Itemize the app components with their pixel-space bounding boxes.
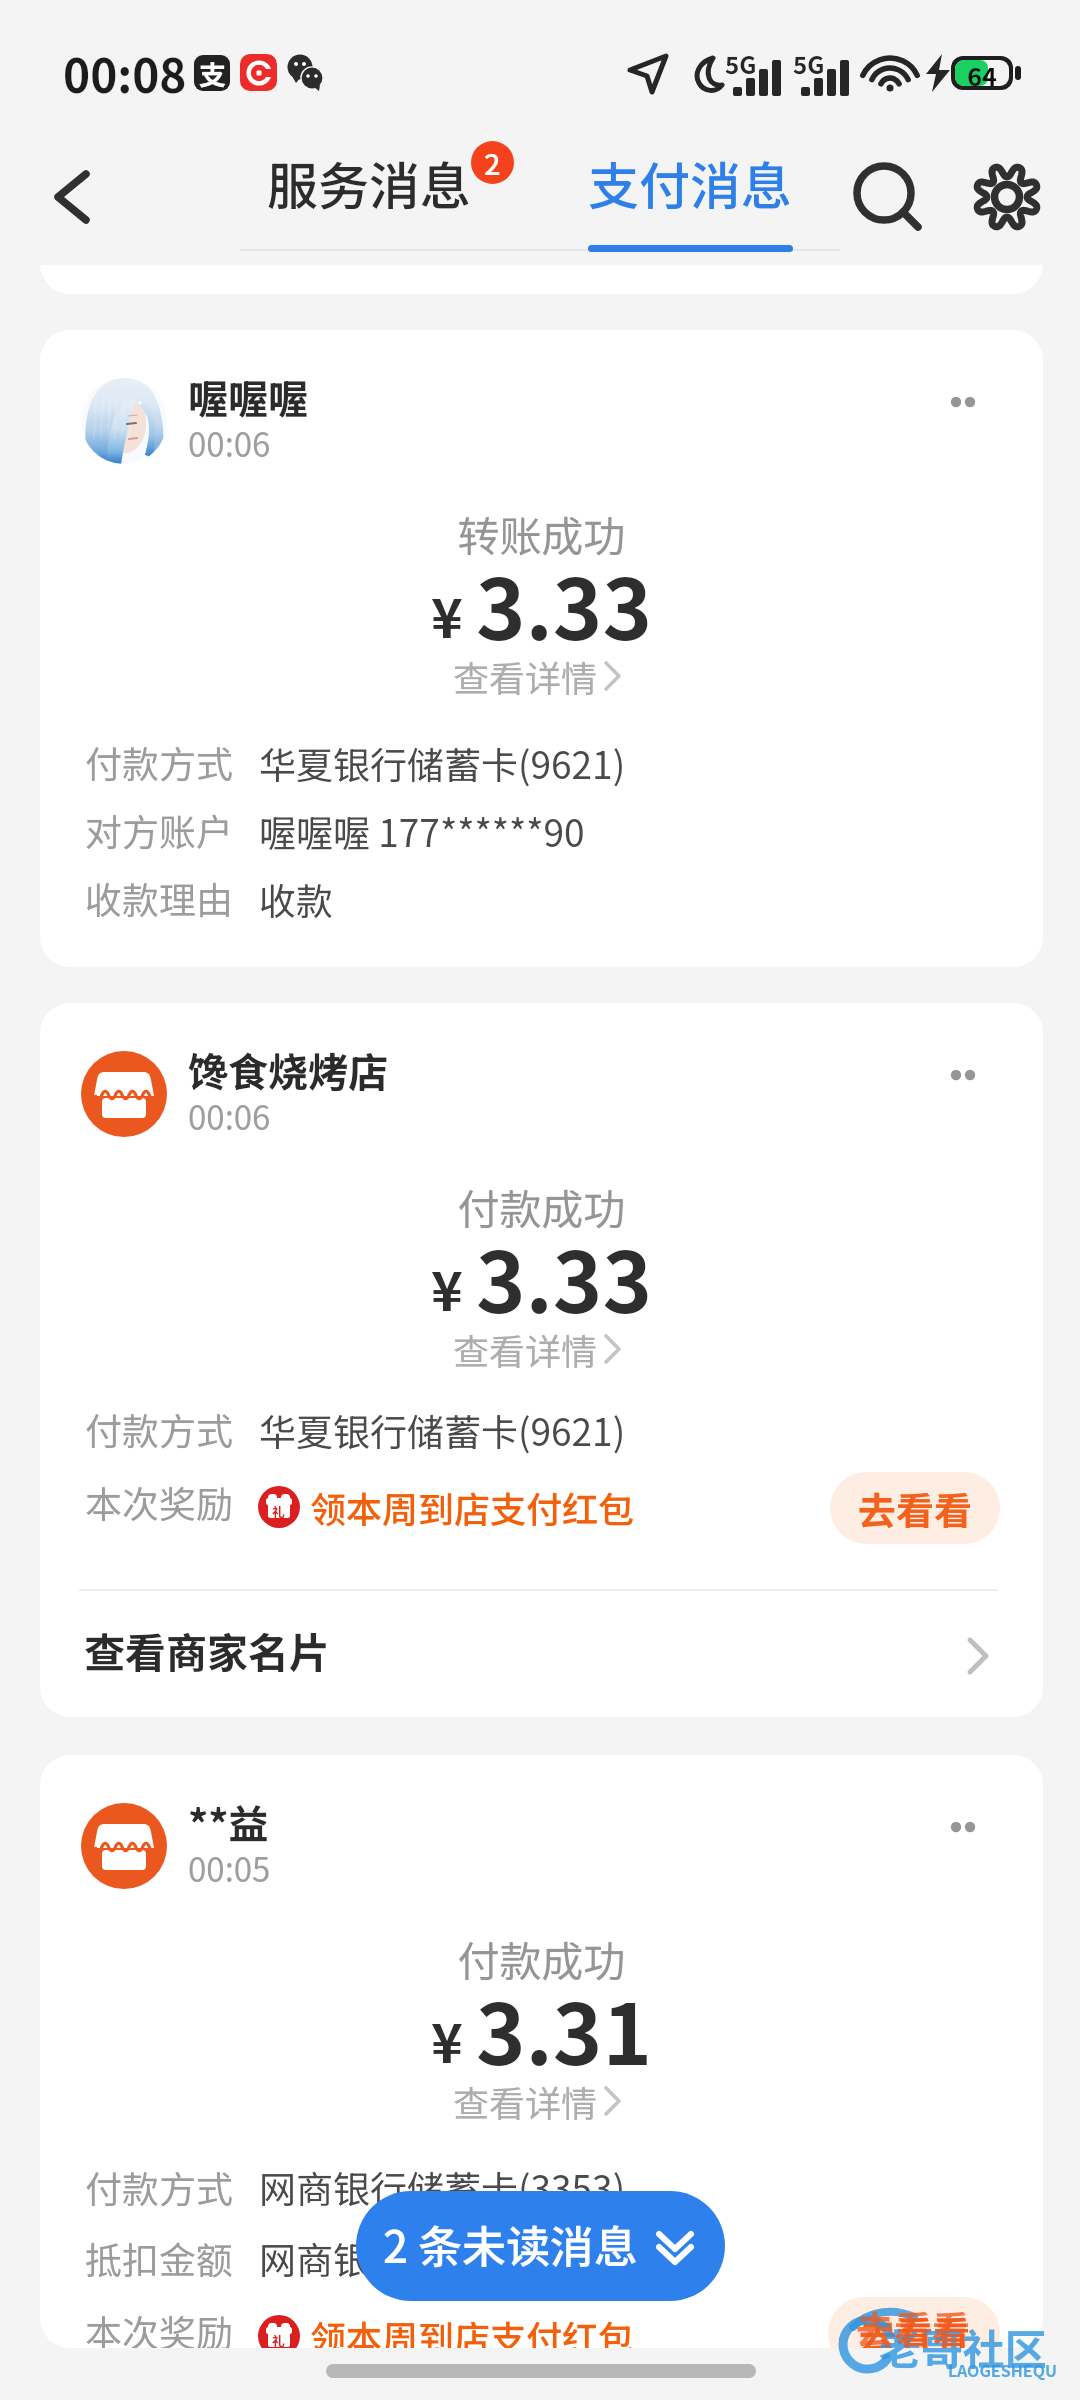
staticText: ¥: [431, 575, 463, 653]
staticText: 转账成功: [40, 503, 1043, 564]
staticText: 00:05: [188, 1844, 271, 1892]
staticText: 馋食烧烤店: [188, 1041, 388, 1099]
staticText: 喔喔喔 177******90: [259, 804, 585, 858]
button[interactable]: Search: [830, 140, 940, 250]
staticText: 抵扣金额: [85, 2231, 233, 2285]
staticText: 付款方式: [85, 1402, 233, 1456]
staticText: 查看详情: [453, 2075, 598, 2127]
staticText: 老哥社区: [879, 2316, 1048, 2377]
button[interactable]: **益: [40, 1755, 1043, 2348]
staticText: 查看详情: [453, 650, 598, 702]
staticText: 服务消息: [267, 146, 472, 220]
button[interactable]: 服务消息: [250, 140, 500, 250]
button[interactable]: 查看详情: [40, 1323, 1043, 1375]
button[interactable]: More options: [912, 1795, 1002, 1855]
staticText: 礼: [272, 2331, 286, 2348]
button[interactable]: 礼: [258, 1481, 635, 1533]
button[interactable]: More options: [912, 1043, 1002, 1103]
button[interactable]: 礼: [258, 2310, 635, 2348]
button[interactable]: 查看商家名片: [40, 1593, 1043, 1717]
staticText: 去看看: [856, 2300, 971, 2355]
staticText: 本次奖励: [85, 2304, 233, 2348]
button[interactable]: 查看详情: [40, 650, 1043, 702]
staticText: 付款方式: [85, 2160, 233, 2214]
staticText: 网商银行储蓄卡(3353): [259, 2160, 626, 2214]
staticText: **益: [188, 1793, 269, 1851]
button[interactable]: Back: [20, 140, 130, 250]
staticText: 00:06: [188, 419, 271, 467]
staticText: 支付消息: [588, 146, 793, 220]
staticText: 2 条未读消息: [383, 2212, 638, 2276]
staticText: 华夏银行储蓄卡(9621): [259, 736, 626, 790]
staticText: 3.33: [476, 543, 652, 665]
staticText: 3.31: [476, 1968, 652, 2090]
staticText: 对方账户: [85, 803, 233, 857]
staticText: 查看商家名片: [84, 1620, 330, 1679]
staticText: 3.33: [476, 1216, 652, 1338]
staticText: 5G: [793, 46, 825, 81]
staticText: 去看看: [859, 2306, 970, 2348]
staticText: 00:06: [188, 1092, 271, 1140]
staticText: 00:08: [63, 40, 187, 107]
staticText: 64: [951, 57, 1013, 91]
staticText: 网商银行借记卡立减0.02: [259, 2231, 664, 2285]
button[interactable]: 去看看: [830, 1472, 1000, 1544]
staticText: 喔喔喔: [188, 368, 308, 426]
staticText: 领本周到店支付红包: [310, 2310, 635, 2348]
staticText: 付款方式: [85, 735, 233, 789]
button[interactable]: 支付消息: [570, 140, 810, 255]
staticText: 支: [199, 55, 226, 90]
staticText: 付款成功: [40, 1928, 1043, 1989]
staticText: 付款成功: [40, 1176, 1043, 1237]
staticText: 2: [484, 141, 501, 183]
staticText: 5G: [725, 46, 757, 81]
staticText: 领本周到店支付红包: [310, 1481, 635, 1533]
staticText: 礼: [272, 1502, 286, 1521]
staticText: 收款理由: [85, 871, 233, 925]
button[interactable]: Settings: [952, 140, 1062, 250]
button[interactable]: 馋食烧烤店: [40, 1003, 1043, 1717]
staticText: 华夏银行储蓄卡(9621): [259, 1403, 626, 1457]
button[interactable]: 喔喔喔: [40, 330, 1043, 967]
button[interactable]: 查看详情: [40, 2075, 1043, 2127]
staticText: LAOGESHEQU: [948, 2358, 1057, 2381]
staticText: 收款: [259, 872, 333, 926]
staticText: ¥: [431, 2000, 463, 2078]
button[interactable]: More options: [912, 370, 1002, 430]
staticText: ¥: [431, 1248, 463, 1326]
button[interactable]: 2 条未读消息: [356, 2191, 725, 2301]
staticText: 查看详情: [453, 1323, 598, 1375]
staticText: 本次奖励: [85, 1475, 233, 1529]
staticText: 去看看: [858, 1481, 973, 1536]
button[interactable]: 去看看: [828, 2297, 1000, 2348]
